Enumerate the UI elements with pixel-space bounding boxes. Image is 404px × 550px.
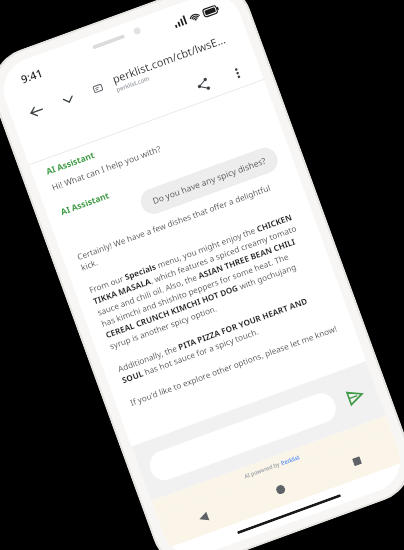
button[interactable]: Perklist [280, 453, 301, 466]
staticText: Hi! What can I help you with? [50, 143, 163, 194]
button[interactable]: perklist.com/cbt/lwsE… [110, 28, 240, 94]
staticText: AI Assistant [44, 149, 96, 178]
button[interactable]: Back [186, 501, 220, 534]
staticText: perklist.com [115, 74, 151, 94]
staticText: Do you have any spicy dishes? [151, 155, 268, 207]
button[interactable]: More options [220, 56, 254, 89]
button[interactable]: Recent apps [340, 444, 374, 478]
button[interactable]: Home [263, 473, 297, 506]
button[interactable]: Downloads [51, 83, 84, 116]
button[interactable]: Page info [86, 77, 109, 100]
button[interactable]: Send [338, 379, 371, 413]
staticText: 9:41 [19, 65, 44, 87]
button[interactable]: Do you have any spicy dishes? [137, 144, 281, 218]
button[interactable]: Back [19, 94, 52, 128]
staticText: Certainly! We have a few dishes that off… [75, 176, 341, 409]
button[interactable]: Share [186, 68, 220, 102]
staticText: AI Assistant [59, 189, 111, 218]
staticText: AI powered by [243, 459, 282, 479]
button[interactable] [146, 389, 340, 484]
staticText: perklist.com/cbt/lwsE… [110, 31, 228, 86]
